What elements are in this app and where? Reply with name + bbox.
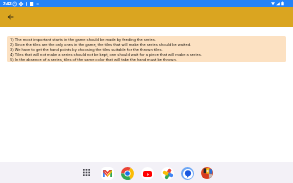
button[interactable]: Chrome	[120, 166, 134, 180]
button[interactable]: All apps	[80, 166, 94, 180]
button[interactable]: Profile	[200, 166, 214, 180]
staticText: 3) We have to get the hand points by cho…	[10, 47, 163, 52]
button[interactable]: YouTube	[140, 166, 154, 180]
button[interactable]: Gmail	[100, 166, 114, 180]
staticText: 7:42	[3, 1, 12, 6]
button[interactable]: Messages	[180, 166, 194, 180]
button[interactable]: Photos	[160, 166, 174, 180]
staticText: 5) In the absence of a series, tiles of …	[10, 57, 177, 62]
staticText: 4) Tiles that will not make a series sho…	[10, 52, 202, 57]
button[interactable]: Back	[3, 10, 17, 24]
staticText: 1) The most important starts in the game…	[10, 37, 157, 42]
staticText: 2) Since the tiles are the only ones in …	[10, 42, 192, 47]
